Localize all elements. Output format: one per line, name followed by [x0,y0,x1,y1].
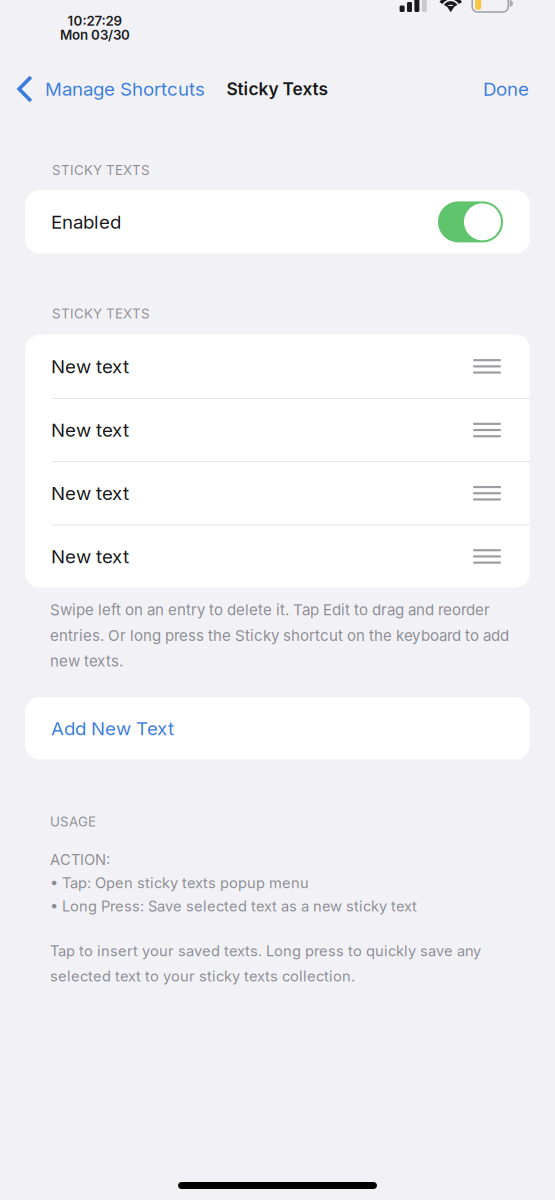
staticText: New text [51,355,129,378]
staticText: Manage Shortcuts [45,78,205,100]
staticText: STICKY TEXTS [52,306,150,322]
staticText: Sticky Texts [226,78,328,99]
staticText: New text [51,419,129,441]
staticText: USAGE [50,814,96,830]
button[interactable]: New text [25,462,530,524]
staticText: STICKY TEXTS [52,162,150,178]
staticText: Add New Text [51,717,174,740]
staticText: Swipe left on an entry to delete it. Tap… [50,601,509,670]
staticText: ACTION: [50,851,110,868]
staticText: • Tap: Open sticky texts popup menu [50,874,309,892]
button[interactable]: Done [483,65,555,107]
button[interactable]: Manage Shortcuts [0,62,205,110]
staticText: New text [51,482,129,505]
staticText: New text [51,545,129,568]
staticText: Done [483,78,529,100]
staticText: • Long Press: Save selected text as a ne… [50,897,417,915]
staticText: Enabled [51,211,121,233]
button[interactable]: New text [25,525,530,588]
button[interactable]: New text [25,335,530,398]
button[interactable]: Enabled [25,190,530,254]
staticText: Tap to insert your saved texts. Long pre… [50,942,481,985]
button[interactable]: New text [25,399,530,461]
staticText: 10:27:29 [67,13,122,29]
button[interactable]: Add New Text [25,697,530,760]
staticText: Mon 03/30 [60,27,130,43]
